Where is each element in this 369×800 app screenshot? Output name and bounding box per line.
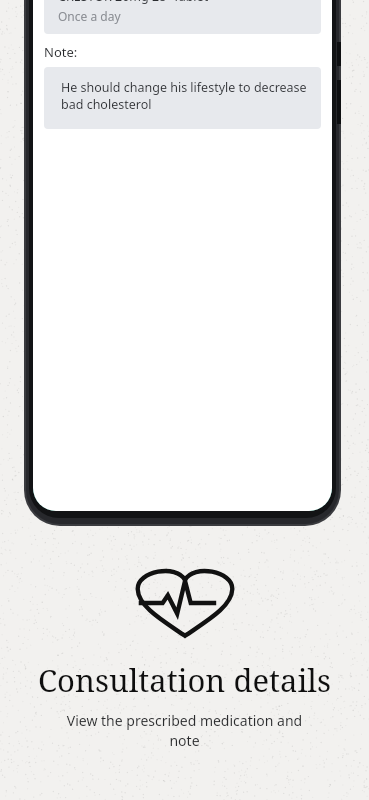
staticText: View the prescribed medication and note	[0, 711, 369, 750]
staticText: Once a day	[58, 8, 121, 24]
staticText: He should change his lifestyle to decrea…	[61, 79, 307, 112]
other: Heart rate	[133, 553, 237, 643]
staticText: CRESTOR 20mg 28 Tablet	[58, 0, 209, 5]
staticText: Consultation details	[38, 659, 331, 701]
button[interactable]: CRESTOR 20mg 28 Tablet	[44, 0, 321, 34]
staticText: Note:	[44, 43, 78, 61]
button[interactable]: He should change his lifestyle to decrea…	[44, 67, 321, 129]
